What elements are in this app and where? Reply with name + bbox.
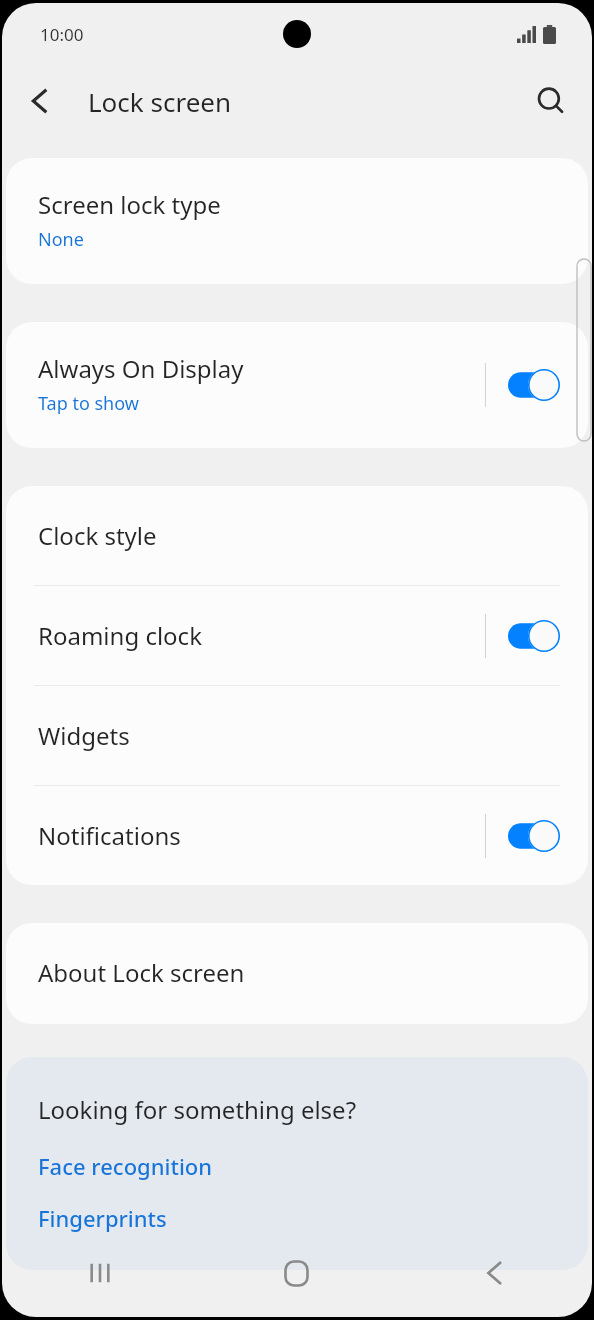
- staticText: None: [38, 227, 84, 252]
- staticText: Lock screen: [88, 84, 232, 119]
- staticText: Notifications: [38, 819, 181, 852]
- button[interactable]: Screen lock type: [6, 158, 588, 284]
- button[interactable]: Widgets: [6, 686, 588, 785]
- staticText: Face recognition: [38, 1151, 213, 1181]
- staticText: Fingerprints: [38, 1203, 167, 1233]
- staticText: Always On Display: [38, 352, 244, 385]
- button[interactable]: About Lock screen: [6, 923, 588, 1024]
- button[interactable]: Recent apps: [2, 1229, 198, 1317]
- button[interactable]: Fingerprints: [38, 1198, 167, 1238]
- button[interactable]: Home: [198, 1229, 395, 1317]
- button[interactable]: Roaming clock: [6, 586, 485, 685]
- button[interactable]: Toggle Notifications: [486, 804, 588, 868]
- button[interactable]: Back: [395, 1229, 592, 1317]
- button[interactable]: Search: [524, 74, 592, 128]
- button[interactable]: Clock style: [6, 486, 588, 585]
- staticText: Roaming clock: [38, 619, 202, 652]
- button[interactable]: Back: [2, 76, 60, 126]
- staticText: Screen lock type: [38, 188, 221, 221]
- button[interactable]: Notifications: [6, 786, 485, 885]
- button[interactable]: Face recognition: [38, 1146, 213, 1186]
- staticText: Looking for something else?: [38, 1093, 357, 1126]
- staticText: Tap to show: [38, 391, 139, 416]
- staticText: Clock style: [38, 519, 157, 552]
- staticText: Widgets: [38, 719, 130, 752]
- staticText: 10:00: [40, 23, 84, 46]
- button[interactable]: Toggle Roaming clock: [486, 604, 588, 668]
- staticText: About Lock screen: [38, 956, 245, 989]
- button[interactable]: Always On Display: [6, 322, 485, 448]
- button[interactable]: Toggle Always On Display: [486, 353, 588, 417]
